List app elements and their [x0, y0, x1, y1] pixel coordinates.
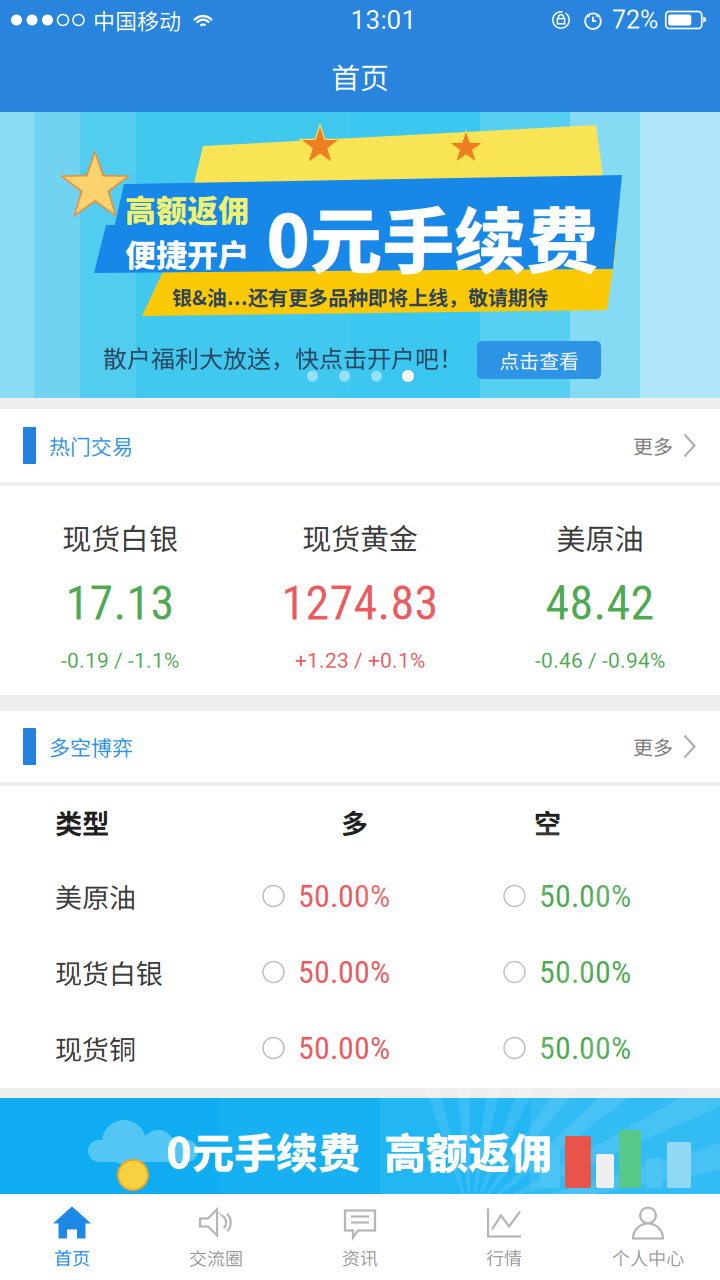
- staticText: 散户福利大放送，快点击开户吧！: [103, 340, 463, 375]
- button[interactable]: 美原油: [0, 858, 720, 934]
- staticText: 银&油...还有更多品种即将上线，敬请期待: [172, 282, 548, 311]
- staticText: 热门交易: [49, 430, 133, 461]
- button[interactable]: 资讯: [288, 1194, 432, 1280]
- button[interactable]: 现货铜: [0, 1010, 720, 1086]
- staticText: 美原油: [556, 516, 643, 558]
- staticText: 50.00%: [539, 877, 631, 915]
- staticText: 48.42: [545, 575, 654, 631]
- staticText: 50.00%: [539, 1029, 631, 1067]
- staticText: 交流圈: [189, 1244, 243, 1271]
- staticText: 便捷开户: [125, 231, 249, 276]
- staticText: 1274.83: [281, 575, 438, 631]
- staticText: 0元手续费: [166, 1120, 360, 1181]
- staticText: 17.13: [65, 575, 174, 631]
- staticText: 点击查看: [499, 345, 579, 374]
- button[interactable]: 美原油: [480, 516, 720, 673]
- staticText: 50.00%: [298, 877, 390, 915]
- staticText: 美原油: [55, 876, 136, 916]
- staticText: 72%: [612, 5, 658, 35]
- staticText: 现货铜: [55, 1028, 136, 1068]
- staticText: 首页: [331, 55, 389, 97]
- button[interactable]: 高额返佣: [0, 112, 720, 398]
- staticText: 空: [534, 802, 561, 842]
- staticText: 50.00%: [298, 953, 390, 991]
- staticText: 13:01: [350, 5, 416, 35]
- button[interactable]: 现货白银: [0, 934, 720, 1010]
- button[interactable]: 现货白银: [0, 516, 240, 673]
- button[interactable]: 交流圈: [144, 1194, 288, 1280]
- staticText: 个人中心: [612, 1244, 684, 1271]
- button[interactable]: 0元手续费: [0, 1098, 720, 1194]
- staticText: 多: [341, 802, 368, 842]
- staticText: -0.46 / -0.94%: [535, 648, 665, 673]
- staticText: 50.00%: [539, 953, 631, 991]
- staticText: 更多: [633, 431, 673, 460]
- staticText: 高额返佣: [125, 186, 249, 231]
- staticText: -0.19 / -1.1%: [61, 648, 179, 673]
- staticText: 中国移动: [93, 4, 181, 36]
- staticText: 现货白银: [62, 516, 178, 558]
- staticText: 0元手续费: [266, 184, 598, 288]
- button[interactable]: 现货黄金: [240, 516, 480, 673]
- staticText: 资讯: [342, 1244, 378, 1271]
- staticText: 行情: [486, 1244, 522, 1271]
- staticText: 多空博弈: [49, 731, 133, 762]
- button[interactable]: 行情: [432, 1194, 576, 1280]
- staticText: 50.00%: [298, 1029, 390, 1067]
- staticText: 现货黄金: [302, 516, 418, 558]
- staticText: 高额返佣: [384, 1120, 552, 1181]
- button[interactable]: 更多: [633, 417, 696, 474]
- staticText: 现货白银: [55, 952, 163, 992]
- staticText: 类型: [55, 802, 109, 842]
- staticText: 更多: [633, 732, 673, 761]
- button[interactable]: 个人中心: [576, 1194, 720, 1280]
- staticText: +1.23 / +0.1%: [295, 648, 425, 673]
- button[interactable]: 更多: [633, 718, 696, 775]
- staticText: 首页: [54, 1244, 90, 1271]
- button[interactable]: 首页: [0, 1194, 144, 1280]
